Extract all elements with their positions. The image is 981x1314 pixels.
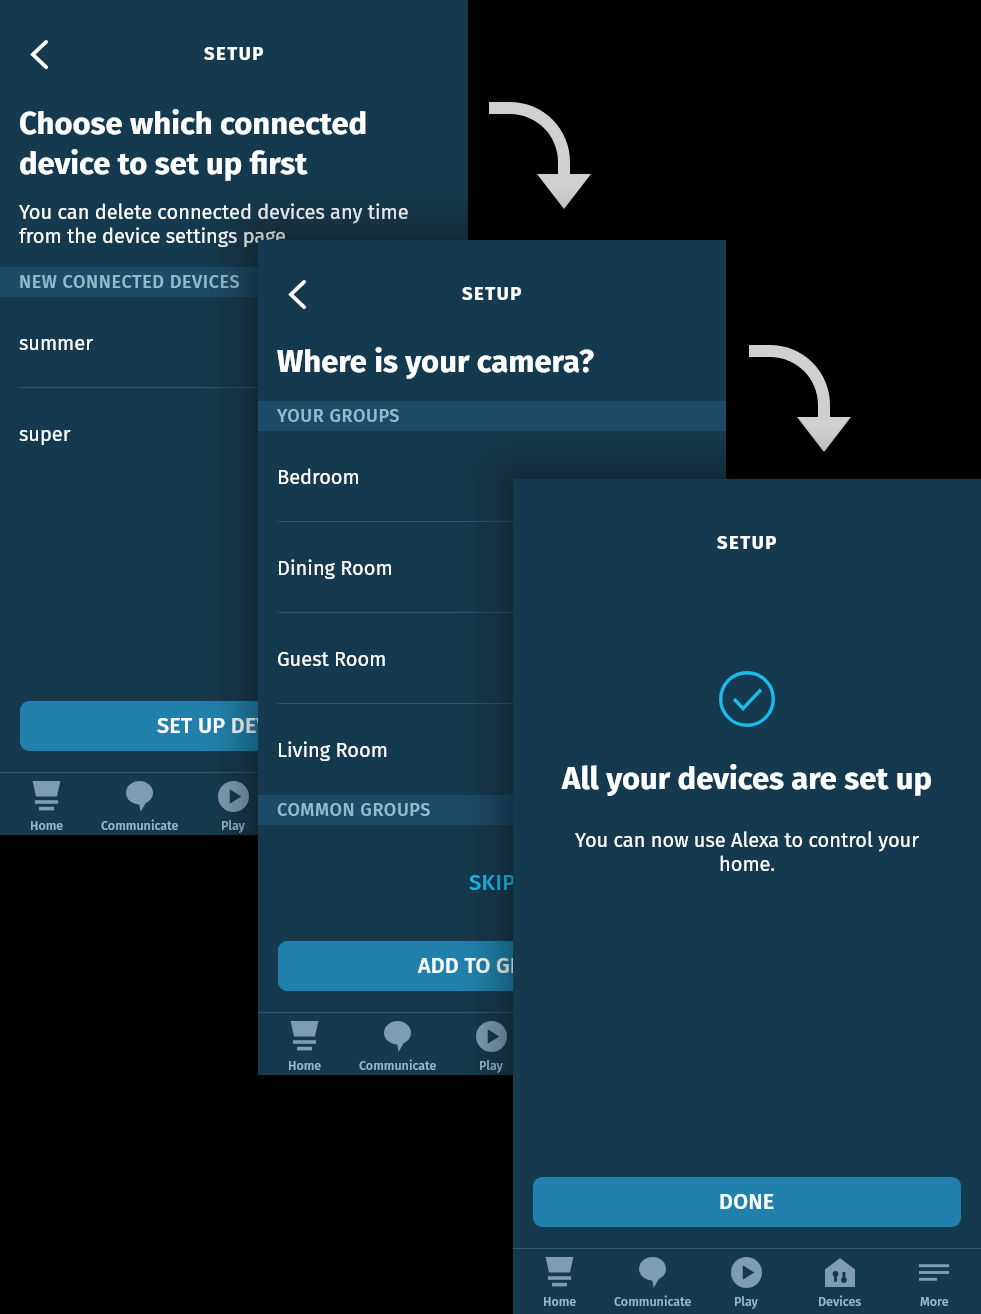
- staticText: Guest Room: [277, 647, 387, 671]
- staticText: NEW CONNECTED DEVICES: [19, 271, 241, 293]
- staticText: You can delete connected devices any tim…: [19, 200, 409, 248]
- staticText: SKIP: [469, 869, 516, 895]
- staticText: Devices: [305, 818, 349, 833]
- staticText: Where is your camera?: [277, 343, 594, 380]
- staticText: Living Room: [277, 738, 388, 762]
- staticText: All your devices are set up: [513, 760, 981, 797]
- button[interactable]: super: [0, 388, 468, 479]
- staticText: Home: [543, 1294, 577, 1309]
- staticText: DONE: [719, 1189, 775, 1215]
- button[interactable]: Devices: [793, 1256, 887, 1309]
- staticText: Devices: [818, 1294, 862, 1309]
- button[interactable]: Play: [699, 1256, 793, 1309]
- button[interactable]: Home: [258, 1020, 351, 1073]
- staticText: Bedroom: [277, 465, 360, 489]
- staticText: SETUP: [717, 532, 778, 554]
- staticText: Play: [479, 1058, 503, 1073]
- staticText: COMMON GROUPS: [277, 799, 431, 821]
- button[interactable]: Home: [0, 780, 93, 833]
- staticText: Home: [288, 1058, 322, 1073]
- staticText: Communicate: [101, 818, 179, 833]
- button[interactable]: summer: [0, 297, 468, 388]
- staticText: ADD TO GROUP: [418, 953, 566, 979]
- staticText: Play: [221, 818, 245, 833]
- button[interactable]: Back: [12, 27, 66, 81]
- button[interactable]: Living Room: [258, 704, 726, 795]
- staticText: Dining Room: [277, 556, 393, 580]
- staticText: More: [920, 1294, 949, 1309]
- button[interactable]: Dining Room: [258, 522, 726, 613]
- button[interactable]: Back: [270, 267, 324, 321]
- staticText: Play: [734, 1294, 758, 1309]
- staticText: You can now use Alexa to control your ho…: [565, 828, 929, 877]
- button[interactable]: Play: [186, 780, 280, 833]
- staticText: Communicate: [359, 1058, 437, 1073]
- staticText: YOUR GROUPS: [277, 405, 400, 427]
- button[interactable]: Communicate: [93, 780, 186, 833]
- button[interactable]: Guest Room: [258, 613, 726, 704]
- staticText: Communicate: [614, 1294, 692, 1309]
- button[interactable]: SKIP: [451, 859, 534, 905]
- button[interactable]: Bedroom: [258, 431, 726, 522]
- button[interactable]: Play: [444, 1020, 538, 1073]
- staticText: SET UP DEVICES: [157, 713, 312, 739]
- staticText: super: [19, 422, 71, 446]
- button[interactable]: Home: [513, 1256, 606, 1309]
- button[interactable]: More: [374, 780, 468, 833]
- staticText: SETUP: [462, 283, 523, 305]
- button[interactable]: ADD TO GROUP: [278, 941, 706, 991]
- staticText: SETUP: [204, 43, 265, 65]
- staticText: Home: [30, 818, 64, 833]
- staticText: More: [407, 818, 436, 833]
- button[interactable]: More: [887, 1256, 981, 1309]
- button[interactable]: Devices: [280, 780, 374, 833]
- staticText: summer: [19, 331, 93, 355]
- staticText: Choose which connected device to set up …: [19, 105, 368, 182]
- button[interactable]: Communicate: [606, 1256, 699, 1309]
- button[interactable]: DONE: [533, 1177, 961, 1227]
- button[interactable]: SET UP DEVICES: [20, 701, 448, 751]
- button[interactable]: Communicate: [351, 1020, 444, 1073]
